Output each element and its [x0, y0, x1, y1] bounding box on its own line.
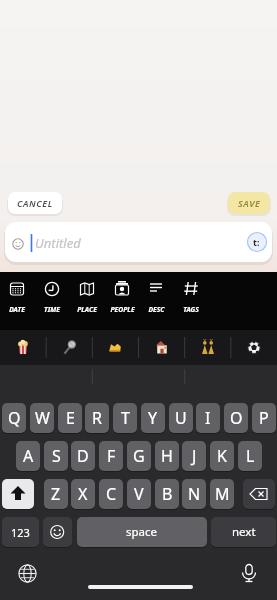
- button[interactable]: DESC: [139, 278, 173, 314]
- staticText: PEOPLE: [110, 305, 135, 314]
- button[interactable]: PEOPLE: [105, 278, 139, 314]
- staticText: t:: [253, 236, 260, 248]
- staticText: PLACE: [77, 305, 97, 314]
- staticText: TIME: [44, 305, 60, 314]
- button[interactable]: SAVE: [228, 192, 270, 214]
- button[interactable]: Y: [141, 403, 165, 433]
- staticText: H: [161, 445, 173, 467]
- button[interactable]: [46, 330, 92, 365]
- button[interactable]: X: [71, 479, 95, 509]
- button[interactable]: next: [211, 517, 276, 547]
- button[interactable]: Z: [44, 479, 68, 509]
- button[interactable]: [43, 517, 72, 547]
- staticText: DATE: [9, 305, 25, 314]
- staticText: space: [126, 524, 158, 540]
- button[interactable]: [139, 330, 185, 365]
- button[interactable]: E: [58, 403, 82, 433]
- button[interactable]: [239, 563, 259, 583]
- button[interactable]: C: [99, 479, 123, 509]
- button[interactable]: A: [16, 441, 40, 471]
- staticText: G: [133, 445, 145, 467]
- staticText: B: [162, 483, 173, 505]
- staticText: CANCEL: [17, 197, 53, 209]
- button[interactable]: U: [169, 403, 193, 433]
- staticText: X: [78, 483, 88, 505]
- button[interactable]: I: [196, 403, 220, 433]
- staticText: V: [134, 483, 144, 505]
- button[interactable]: V: [127, 479, 151, 509]
- staticText: W: [35, 407, 50, 429]
- staticText: next: [232, 524, 256, 540]
- button[interactable]: P: [252, 403, 276, 433]
- button[interactable]: [92, 330, 138, 365]
- staticText: Y: [148, 407, 158, 429]
- staticText: DESC: [148, 305, 165, 314]
- button[interactable]: N: [182, 479, 206, 509]
- staticText: F: [107, 445, 116, 467]
- button[interactable]: J: [182, 441, 206, 471]
- staticText: O: [230, 407, 243, 429]
- staticText: T: [121, 407, 130, 429]
- staticText: K: [217, 445, 227, 467]
- staticText: M: [215, 483, 230, 505]
- button[interactable]: M: [210, 479, 234, 509]
- button[interactable]: L: [238, 441, 262, 471]
- button[interactable]: CANCEL: [8, 192, 62, 214]
- button[interactable]: TAGS: [174, 278, 208, 314]
- staticText: TAGS: [183, 305, 199, 314]
- button[interactable]: [0, 330, 46, 365]
- staticText: U: [175, 407, 187, 429]
- staticText: N: [188, 483, 201, 505]
- button[interactable]: S: [44, 441, 68, 471]
- button[interactable]: 123: [2, 517, 39, 547]
- staticText: Z: [51, 483, 61, 505]
- button[interactable]: [243, 479, 275, 509]
- button[interactable]: G: [127, 441, 151, 471]
- staticText: Q: [8, 407, 21, 429]
- staticText: D: [77, 445, 89, 467]
- staticText: J: [192, 445, 197, 467]
- button[interactable]: W: [30, 403, 54, 433]
- staticText: L: [246, 445, 255, 467]
- button[interactable]: K: [210, 441, 234, 471]
- button[interactable]: F: [99, 441, 123, 471]
- button[interactable]: R: [85, 403, 109, 433]
- staticText: S: [52, 445, 61, 467]
- button[interactable]: H: [155, 441, 179, 471]
- staticText: A: [23, 445, 34, 467]
- button[interactable]: [231, 330, 277, 365]
- button[interactable]: T: [113, 403, 137, 433]
- button[interactable]: Untitled: [5, 222, 272, 262]
- button[interactable]: O: [224, 403, 248, 433]
- button[interactable]: [2, 479, 34, 509]
- button[interactable]: [18, 564, 37, 583]
- staticText: R: [92, 407, 102, 429]
- button[interactable]: space: [77, 517, 207, 547]
- staticText: P: [259, 407, 269, 429]
- button[interactable]: PLACE: [70, 278, 104, 314]
- button[interactable]: [185, 330, 231, 365]
- button[interactable]: D: [71, 441, 95, 471]
- staticText: SAVE: [238, 197, 261, 209]
- staticText: I: [205, 407, 211, 429]
- button[interactable]: B: [155, 479, 179, 509]
- button[interactable]: TIME: [35, 278, 69, 314]
- staticText: C: [106, 483, 117, 505]
- staticText: Untitled: [35, 234, 81, 252]
- staticText: 123: [11, 525, 30, 540]
- button[interactable]: DATE: [0, 278, 34, 314]
- button[interactable]: Q: [2, 403, 26, 433]
- staticText: E: [66, 407, 75, 429]
